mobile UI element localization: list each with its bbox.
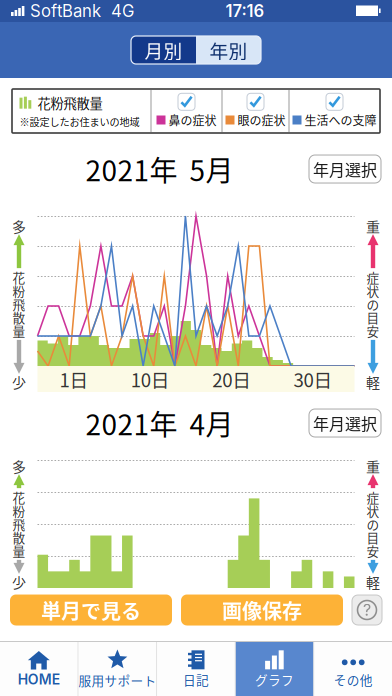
staticText: 量 <box>12 321 25 340</box>
button[interactable]: 月別 <box>131 36 196 64</box>
button[interactable]: 生活への支障 <box>289 90 379 132</box>
staticText: 10日 <box>131 365 170 392</box>
button[interactable]: グラフ <box>236 642 313 696</box>
button[interactable]: 鼻の症状 <box>151 90 221 132</box>
staticText: 少 <box>12 372 26 392</box>
button[interactable]: HOME <box>0 642 78 696</box>
staticText: 服用サポート <box>79 671 156 689</box>
button[interactable]: 単月で見る <box>10 594 172 625</box>
staticText: の <box>366 295 379 313</box>
button[interactable]: 年月選択 <box>309 409 381 437</box>
staticText: グラフ <box>255 670 294 689</box>
staticText: 飛 <box>12 515 25 533</box>
staticText: 多 <box>12 216 26 236</box>
staticText: 重 <box>366 456 380 476</box>
staticText: 1日 <box>59 365 88 392</box>
staticText: HOME <box>18 671 60 688</box>
staticText: 飛 <box>12 295 25 313</box>
staticText: 症 <box>366 488 379 506</box>
staticText: の <box>366 515 379 533</box>
button[interactable]: 年別 <box>196 36 261 64</box>
button[interactable]: その他 <box>314 642 392 696</box>
staticText: 状 <box>366 281 379 300</box>
staticText: その他 <box>334 670 373 689</box>
button[interactable]: 日記 <box>157 642 235 696</box>
staticText: 画像保存 <box>222 595 302 624</box>
staticText: 2021年 5月 <box>85 149 233 189</box>
staticText: 月別 <box>144 36 182 63</box>
staticText: 鼻の症状 <box>168 111 216 129</box>
staticText: 多 <box>12 456 26 476</box>
staticText: ? <box>363 600 371 620</box>
staticText: 安 <box>366 321 379 340</box>
staticText: 年月選択 <box>313 411 377 435</box>
button[interactable]: 眼の症状 <box>222 90 288 132</box>
button[interactable]: 年月選択 <box>309 155 381 183</box>
staticText: 生活への支障 <box>304 111 376 129</box>
staticText: 少 <box>12 572 26 592</box>
staticText: 眼の症状 <box>237 111 285 129</box>
staticText: 花 <box>12 268 25 286</box>
button[interactable]: ヘルプ <box>352 595 382 625</box>
staticText: 30日 <box>293 365 332 392</box>
staticText: 単月で見る <box>41 595 141 624</box>
staticText: 状 <box>366 501 379 520</box>
staticText: 17:16 <box>225 1 264 21</box>
staticText: 粉 <box>12 281 25 300</box>
staticText: 量 <box>12 541 25 560</box>
staticText: 軽 <box>366 572 380 592</box>
staticText: 2021年 4月 <box>85 403 233 443</box>
staticText: 花粉飛散量 <box>37 93 102 112</box>
staticText: 粉 <box>12 501 25 520</box>
staticText: SoftBank 4G <box>25 1 134 21</box>
button[interactable]: 画像保存 <box>181 594 343 625</box>
button[interactable]: 服用サポート <box>79 642 156 696</box>
staticText: 目 <box>366 528 379 546</box>
staticText: 目 <box>366 308 379 326</box>
staticText: 散 <box>12 528 25 546</box>
staticText: 日記 <box>183 670 209 689</box>
staticText: 年別 <box>209 36 247 63</box>
staticText: 花 <box>12 488 25 506</box>
staticText: 散 <box>12 308 25 326</box>
staticText: 20日 <box>212 365 251 392</box>
staticText: 重 <box>366 216 380 236</box>
staticText: 年月選択 <box>313 157 377 181</box>
staticText: 症 <box>366 268 379 286</box>
staticText: 安 <box>366 541 379 560</box>
staticText: 軽 <box>366 372 380 392</box>
staticText: ※設定したお住まいの地域 <box>19 114 139 129</box>
